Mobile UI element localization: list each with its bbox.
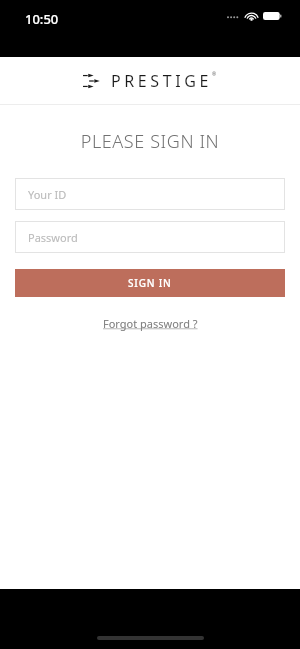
staticText: SIGN IN	[128, 276, 172, 290]
button[interactable]: Password	[15, 221, 285, 253]
staticText: ®	[212, 71, 217, 78]
staticText: Your ID	[28, 187, 67, 202]
staticText: Password	[28, 230, 78, 245]
staticText: PRESTIGE	[111, 70, 212, 92]
button[interactable]: SIGN IN	[15, 269, 285, 297]
staticText: PLEASE SIGN IN	[0, 129, 300, 154]
staticText: 10:50	[25, 10, 59, 28]
button[interactable]: Forgot password ?	[95, 313, 206, 334]
staticText: Forgot password ?	[103, 316, 198, 331]
other: Prestige logo	[83, 73, 101, 89]
button[interactable]: Your ID	[15, 178, 285, 210]
